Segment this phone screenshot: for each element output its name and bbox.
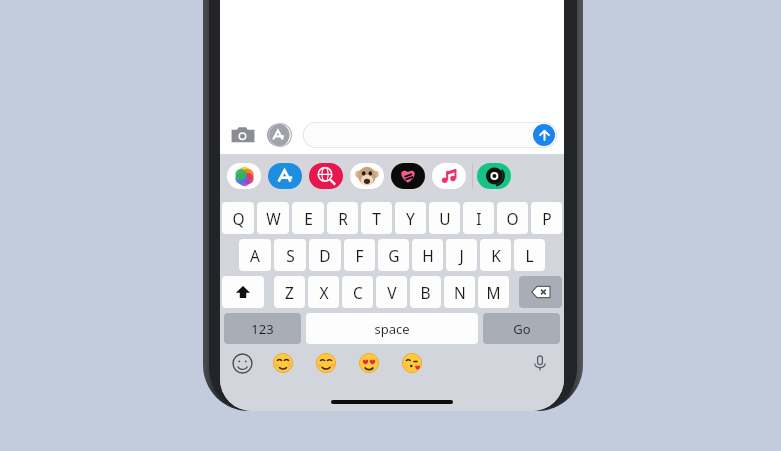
button[interactable]: 123 [224,313,301,344]
staticText: G [388,245,400,266]
button[interactable]: B [410,276,441,308]
button[interactable]: C [342,276,373,308]
staticText: W [266,208,281,229]
button[interactable]: E [292,202,324,234]
staticText: B [420,282,431,303]
staticText: space [374,320,410,338]
button[interactable]: Send [533,124,555,146]
staticText: Q [232,208,245,229]
button[interactable]: App [227,163,261,189]
button[interactable]: P [531,202,562,234]
button[interactable]: Relieved emoji [272,352,294,374]
staticText: M [486,282,501,303]
button[interactable]: App [477,163,511,189]
button[interactable]: U [429,202,460,234]
staticText: R [338,208,348,229]
staticText: F [355,245,364,266]
button[interactable]: Y [395,202,426,234]
staticText: A [250,245,260,266]
button[interactable]: N [444,276,475,308]
button[interactable]: O [497,202,528,234]
button[interactable]: Shift [222,276,264,308]
staticText: H [422,245,434,266]
button[interactable]: X [308,276,339,308]
button[interactable]: J [446,239,477,271]
button[interactable]: Backspace [519,276,562,308]
button[interactable]: Z [274,276,305,308]
button[interactable]: Q [222,202,254,234]
button[interactable]: Heart eyes emoji [358,352,380,374]
staticText: S [286,245,295,266]
button[interactable]: App [391,163,425,189]
button[interactable]: M [478,276,509,308]
staticText: Y [406,208,415,229]
button[interactable]: I [463,202,494,234]
staticText: Go [513,320,531,338]
button[interactable]: App [432,163,466,189]
staticText: J [459,245,464,266]
button[interactable]: W [257,202,289,234]
button[interactable]: L [514,239,545,271]
button[interactable]: Kiss emoji [401,352,423,374]
button[interactable]: A [239,239,271,271]
button[interactable]: R [327,202,358,234]
button[interactable]: App [309,163,343,189]
staticText: L [525,245,534,266]
button[interactable]: Dictation [528,351,552,375]
staticText: Z [285,282,294,303]
button[interactable]: V [376,276,407,308]
button[interactable]: F [344,239,375,271]
button[interactable]: S [274,239,306,271]
staticText: O [506,208,519,229]
staticText: D [319,245,331,266]
button[interactable]: App Store [264,120,294,150]
staticText: 123 [251,320,274,338]
staticText: C [353,282,363,303]
button[interactable]: D [309,239,341,271]
button[interactable]: H [412,239,443,271]
button[interactable]: Smile emoji [315,352,337,374]
button[interactable]: space [306,313,478,344]
staticText: X [319,282,329,303]
button[interactable]: T [361,202,392,234]
button[interactable]: App [350,163,384,189]
staticText: N [454,282,466,303]
staticText: E [304,208,313,229]
button[interactable]: Emoji keyboard [230,351,254,375]
button[interactable]: Camera [228,120,258,150]
staticText: K [491,245,501,266]
button[interactable]: Go [483,313,560,344]
button[interactable]: Send [303,122,557,148]
staticText: U [439,208,451,229]
button[interactable]: G [378,239,409,271]
staticText: T [372,208,381,229]
button[interactable]: App [268,163,302,189]
button[interactable]: K [480,239,511,271]
staticText: P [542,208,552,229]
staticText: I [476,208,482,229]
staticText: V [387,282,397,303]
